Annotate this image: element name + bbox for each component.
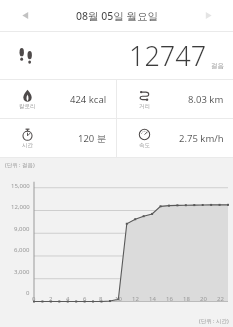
staticText: 속도 xyxy=(139,142,150,149)
staticText: 18 xyxy=(183,295,190,303)
staticText: 12,000 xyxy=(11,203,30,211)
staticText: 22 xyxy=(217,295,224,303)
staticText: 20 xyxy=(200,295,207,303)
staticText: 14 xyxy=(149,295,156,303)
staticText: 걸음 xyxy=(211,62,224,70)
button[interactable]: 시간 xyxy=(0,119,116,157)
staticText: (단위 : 걸음) xyxy=(5,161,35,169)
staticText: 6 xyxy=(83,295,87,303)
staticText: 0 xyxy=(32,295,36,303)
staticText: 0 xyxy=(26,289,30,297)
staticText: 2 xyxy=(49,295,53,303)
button[interactable]: 12747 xyxy=(0,32,233,79)
staticText: 10 xyxy=(115,295,122,303)
staticText: 12 xyxy=(132,295,139,303)
staticText: 2.75 km/h xyxy=(179,132,224,145)
staticText: 8.03 km xyxy=(188,93,224,106)
staticText: 424 kcal xyxy=(70,93,107,106)
staticText: 15,000 xyxy=(11,182,30,190)
staticText: 4 xyxy=(66,295,70,303)
staticText: 시간 xyxy=(22,142,33,149)
button[interactable]: 속도 xyxy=(117,119,233,157)
staticText: 칼로리 xyxy=(19,103,36,110)
staticText: 6,000 xyxy=(14,246,30,254)
staticText: 16 xyxy=(166,295,173,303)
staticText: 8 xyxy=(99,295,103,303)
staticText: (단위 : 시간) xyxy=(199,317,229,325)
staticText: 12747 xyxy=(129,37,207,74)
button[interactable]: 거리 xyxy=(117,80,233,118)
staticText: 9,000 xyxy=(14,225,30,233)
button[interactable]: (단위 : 걸음) xyxy=(0,158,233,327)
staticText: 120 분 xyxy=(78,132,107,145)
staticText: 08월 05일 월요일 xyxy=(76,9,158,23)
button[interactable]: 칼로리 xyxy=(0,80,116,118)
staticText: 3,000 xyxy=(14,268,30,276)
staticText: 거리 xyxy=(139,103,150,110)
button[interactable]: Previous day xyxy=(0,0,50,31)
